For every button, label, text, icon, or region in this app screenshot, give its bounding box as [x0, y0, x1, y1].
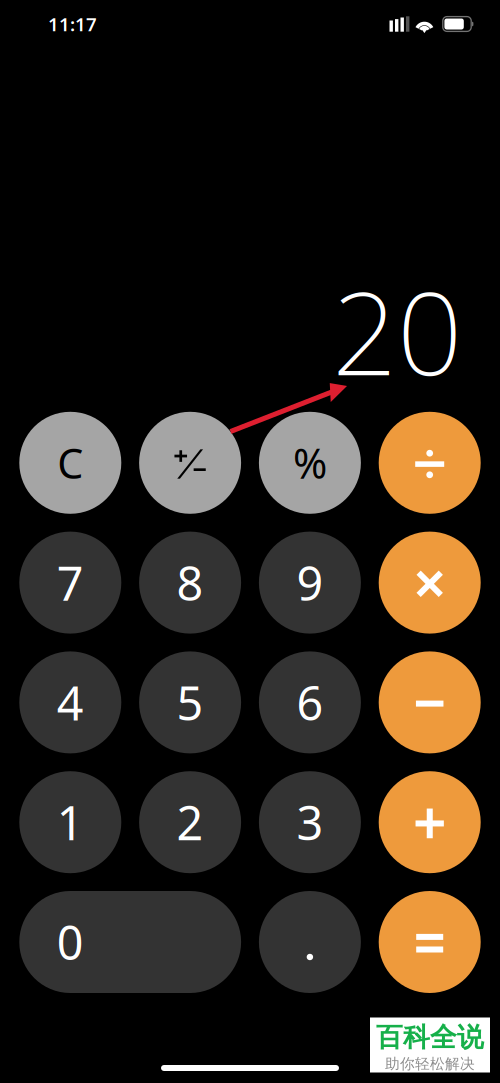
button[interactable]: C: [19, 412, 121, 514]
staticText: 6: [296, 671, 323, 733]
button[interactable]: 8: [139, 532, 241, 634]
button[interactable]: %: [259, 412, 361, 514]
button[interactable]: Subtract: [379, 651, 481, 753]
staticText: 11:17: [48, 12, 97, 36]
staticText: 0: [57, 911, 84, 973]
button[interactable]: 2: [139, 771, 241, 873]
button[interactable]: Multiply: [379, 532, 481, 634]
staticText: 20: [332, 254, 462, 407]
button[interactable]: Decimal point: [259, 891, 361, 993]
staticText: 3: [296, 791, 323, 853]
button[interactable]: 0: [19, 891, 241, 993]
staticText: 百科全说: [376, 1021, 484, 1054]
staticText: 4: [57, 671, 84, 733]
button[interactable]: 7: [19, 532, 121, 634]
staticText: C: [57, 435, 83, 490]
staticText: 8: [177, 552, 204, 614]
button[interactable]: 9: [259, 532, 361, 634]
button[interactable]: Divide: [379, 412, 481, 514]
button[interactable]: 6: [259, 651, 361, 753]
staticText: 助你轻松解决: [385, 1055, 475, 1073]
button[interactable]: Add: [379, 771, 481, 873]
staticText: %: [293, 435, 327, 490]
button[interactable]: Equals: [379, 891, 481, 993]
staticText: 1: [57, 791, 84, 853]
button[interactable]: 4: [19, 651, 121, 753]
button[interactable]: 1: [19, 771, 121, 873]
staticText: 5: [177, 671, 204, 733]
button[interactable]: Toggle sign: [139, 412, 241, 514]
staticText: 9: [296, 552, 323, 614]
button[interactable]: 3: [259, 771, 361, 873]
staticText: 7: [57, 552, 84, 614]
button[interactable]: 5: [139, 651, 241, 753]
staticText: 2: [177, 791, 204, 853]
